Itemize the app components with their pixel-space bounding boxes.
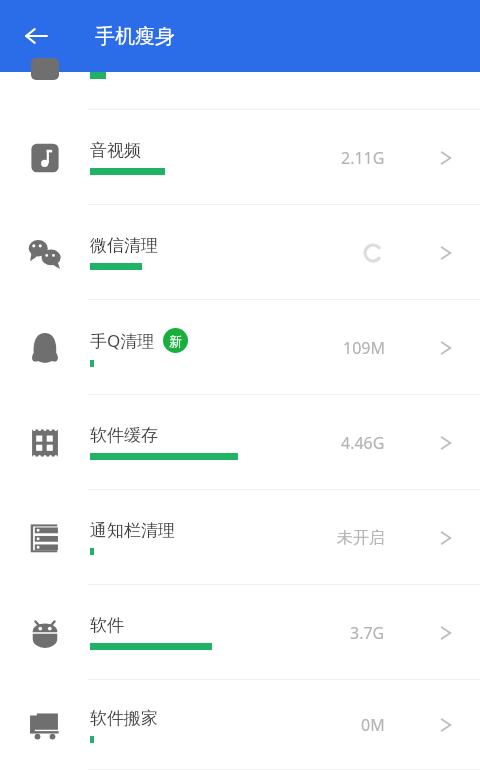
button[interactable] xyxy=(0,72,480,110)
button[interactable]: 软件搬家 xyxy=(0,680,480,770)
button[interactable]: 微信清理 xyxy=(0,205,480,300)
staticText: 109M xyxy=(343,337,385,359)
staticText: 2.11G xyxy=(341,147,385,169)
button[interactable]: 通知栏清理 xyxy=(0,490,480,585)
staticText: 音视频 xyxy=(90,140,141,161)
staticText: 软件缓存 xyxy=(90,425,158,446)
button[interactable]: Back xyxy=(14,14,58,58)
staticText: 手机瘦身 xyxy=(95,24,175,49)
staticText: 通知栏清理 xyxy=(90,520,175,541)
staticText: 未开启 xyxy=(337,528,385,548)
staticText: 0M xyxy=(361,714,385,736)
button[interactable]: 软件 xyxy=(0,585,480,680)
staticText: 新 xyxy=(169,333,182,349)
staticText: 软件 xyxy=(90,615,124,636)
staticText: 4.46G xyxy=(341,432,385,454)
staticText: 3.7G xyxy=(350,622,385,644)
button[interactable]: 软件缓存 xyxy=(0,395,480,490)
button[interactable]: 手Q清理 xyxy=(0,300,480,395)
staticText: 微信清理 xyxy=(90,235,158,256)
staticText: 软件搬家 xyxy=(90,708,158,729)
button[interactable]: 音视频 xyxy=(0,110,480,205)
staticText: 手Q清理 xyxy=(90,329,155,352)
